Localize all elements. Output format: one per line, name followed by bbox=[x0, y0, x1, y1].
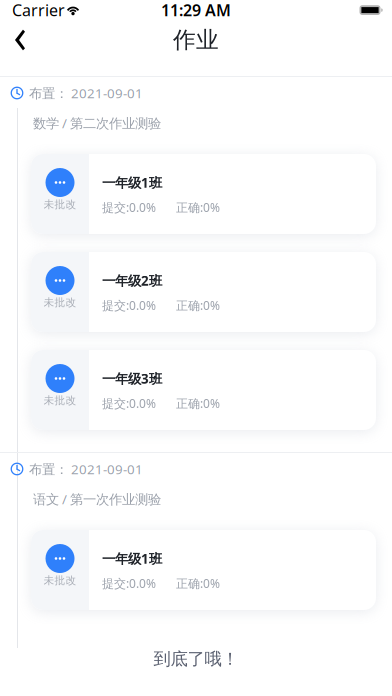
staticText: 正确:0% bbox=[176, 297, 220, 313]
staticText: 提交:0.0% bbox=[102, 297, 156, 313]
staticText: 语文 / 第一次作业测验 bbox=[33, 490, 161, 508]
staticText: 未批改 bbox=[43, 394, 76, 407]
button[interactable]: 未批改 bbox=[31, 350, 376, 430]
staticText: 到底了哦！ bbox=[153, 648, 238, 670]
staticText: 作业 bbox=[173, 26, 219, 54]
button[interactable]: 未批改 bbox=[31, 530, 376, 610]
staticText: 数学 / 第二次作业测验 bbox=[33, 114, 161, 132]
button[interactable]: 未批改 bbox=[31, 252, 376, 332]
staticText: 正确:0% bbox=[176, 575, 220, 591]
staticText: 一年级1班 bbox=[102, 174, 162, 191]
staticText: 未批改 bbox=[43, 198, 76, 211]
staticText: 一年级2班 bbox=[102, 272, 162, 289]
staticText: 未批改 bbox=[43, 296, 76, 309]
staticText: Carrier bbox=[12, 0, 65, 21]
staticText: 11:29 AM bbox=[161, 0, 231, 21]
staticText: 一年级1班 bbox=[102, 550, 162, 567]
button[interactable]: 未批改 bbox=[31, 154, 376, 234]
staticText: 一年级3班 bbox=[102, 370, 162, 387]
staticText: 提交:0.0% bbox=[102, 395, 156, 411]
button[interactable]: Back bbox=[0, 18, 40, 62]
staticText: 布置： 2021-09-01 bbox=[29, 84, 143, 102]
staticText: 提交:0.0% bbox=[102, 575, 156, 591]
staticText: 正确:0% bbox=[176, 199, 220, 215]
staticText: 布置： 2021-09-01 bbox=[29, 460, 143, 478]
staticText: 未批改 bbox=[43, 574, 76, 587]
staticText: 提交:0.0% bbox=[102, 199, 156, 215]
staticText: 正确:0% bbox=[176, 395, 220, 411]
